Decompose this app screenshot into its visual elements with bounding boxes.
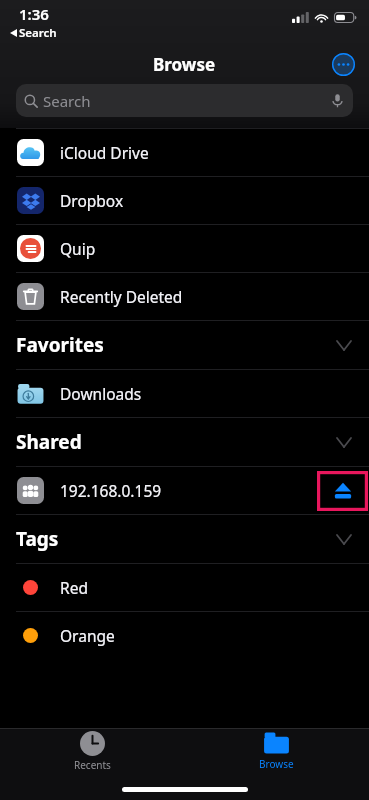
button[interactable]: iCloud Drive: [0, 129, 369, 176]
staticText: Orange: [60, 625, 115, 646]
staticText: iCloud Drive: [60, 142, 149, 163]
staticText: Recents: [74, 758, 111, 772]
button[interactable]: Dropbox: [0, 177, 369, 224]
staticText: Recently Deleted: [60, 286, 183, 307]
button[interactable]: Shared: [0, 418, 369, 466]
staticText: Search: [19, 25, 57, 41]
button[interactable]: Browse: [243, 729, 310, 773]
button[interactable]: 192.168.0.159: [0, 467, 369, 514]
staticText: Quip: [60, 238, 96, 259]
staticText: Search: [43, 91, 91, 111]
button[interactable]: Recents: [58, 729, 127, 774]
button[interactable]: Downloads: [0, 370, 369, 417]
staticText: 192.168.0.159: [60, 480, 162, 501]
staticText: 1:36: [19, 4, 49, 24]
staticText: Browse: [153, 53, 216, 76]
button[interactable]: More options: [329, 50, 357, 78]
button[interactable]: Red: [0, 564, 369, 611]
staticText: Favorites: [16, 332, 104, 358]
staticText: Red: [60, 577, 88, 598]
staticText: Dropbox: [60, 190, 124, 211]
staticText: Shared: [16, 429, 82, 455]
button[interactable]: Recently Deleted: [0, 273, 369, 320]
staticText: Downloads: [60, 383, 142, 404]
button[interactable]: Favorites: [0, 321, 369, 369]
button[interactable]: Orange: [0, 612, 369, 659]
button[interactable]: Tags: [0, 515, 369, 563]
staticText: Browse: [259, 757, 294, 771]
staticText: Tags: [16, 526, 59, 552]
button[interactable]: Quip: [0, 225, 369, 272]
button[interactable]: Search: [16, 84, 353, 117]
button[interactable]: Eject: [317, 471, 368, 511]
